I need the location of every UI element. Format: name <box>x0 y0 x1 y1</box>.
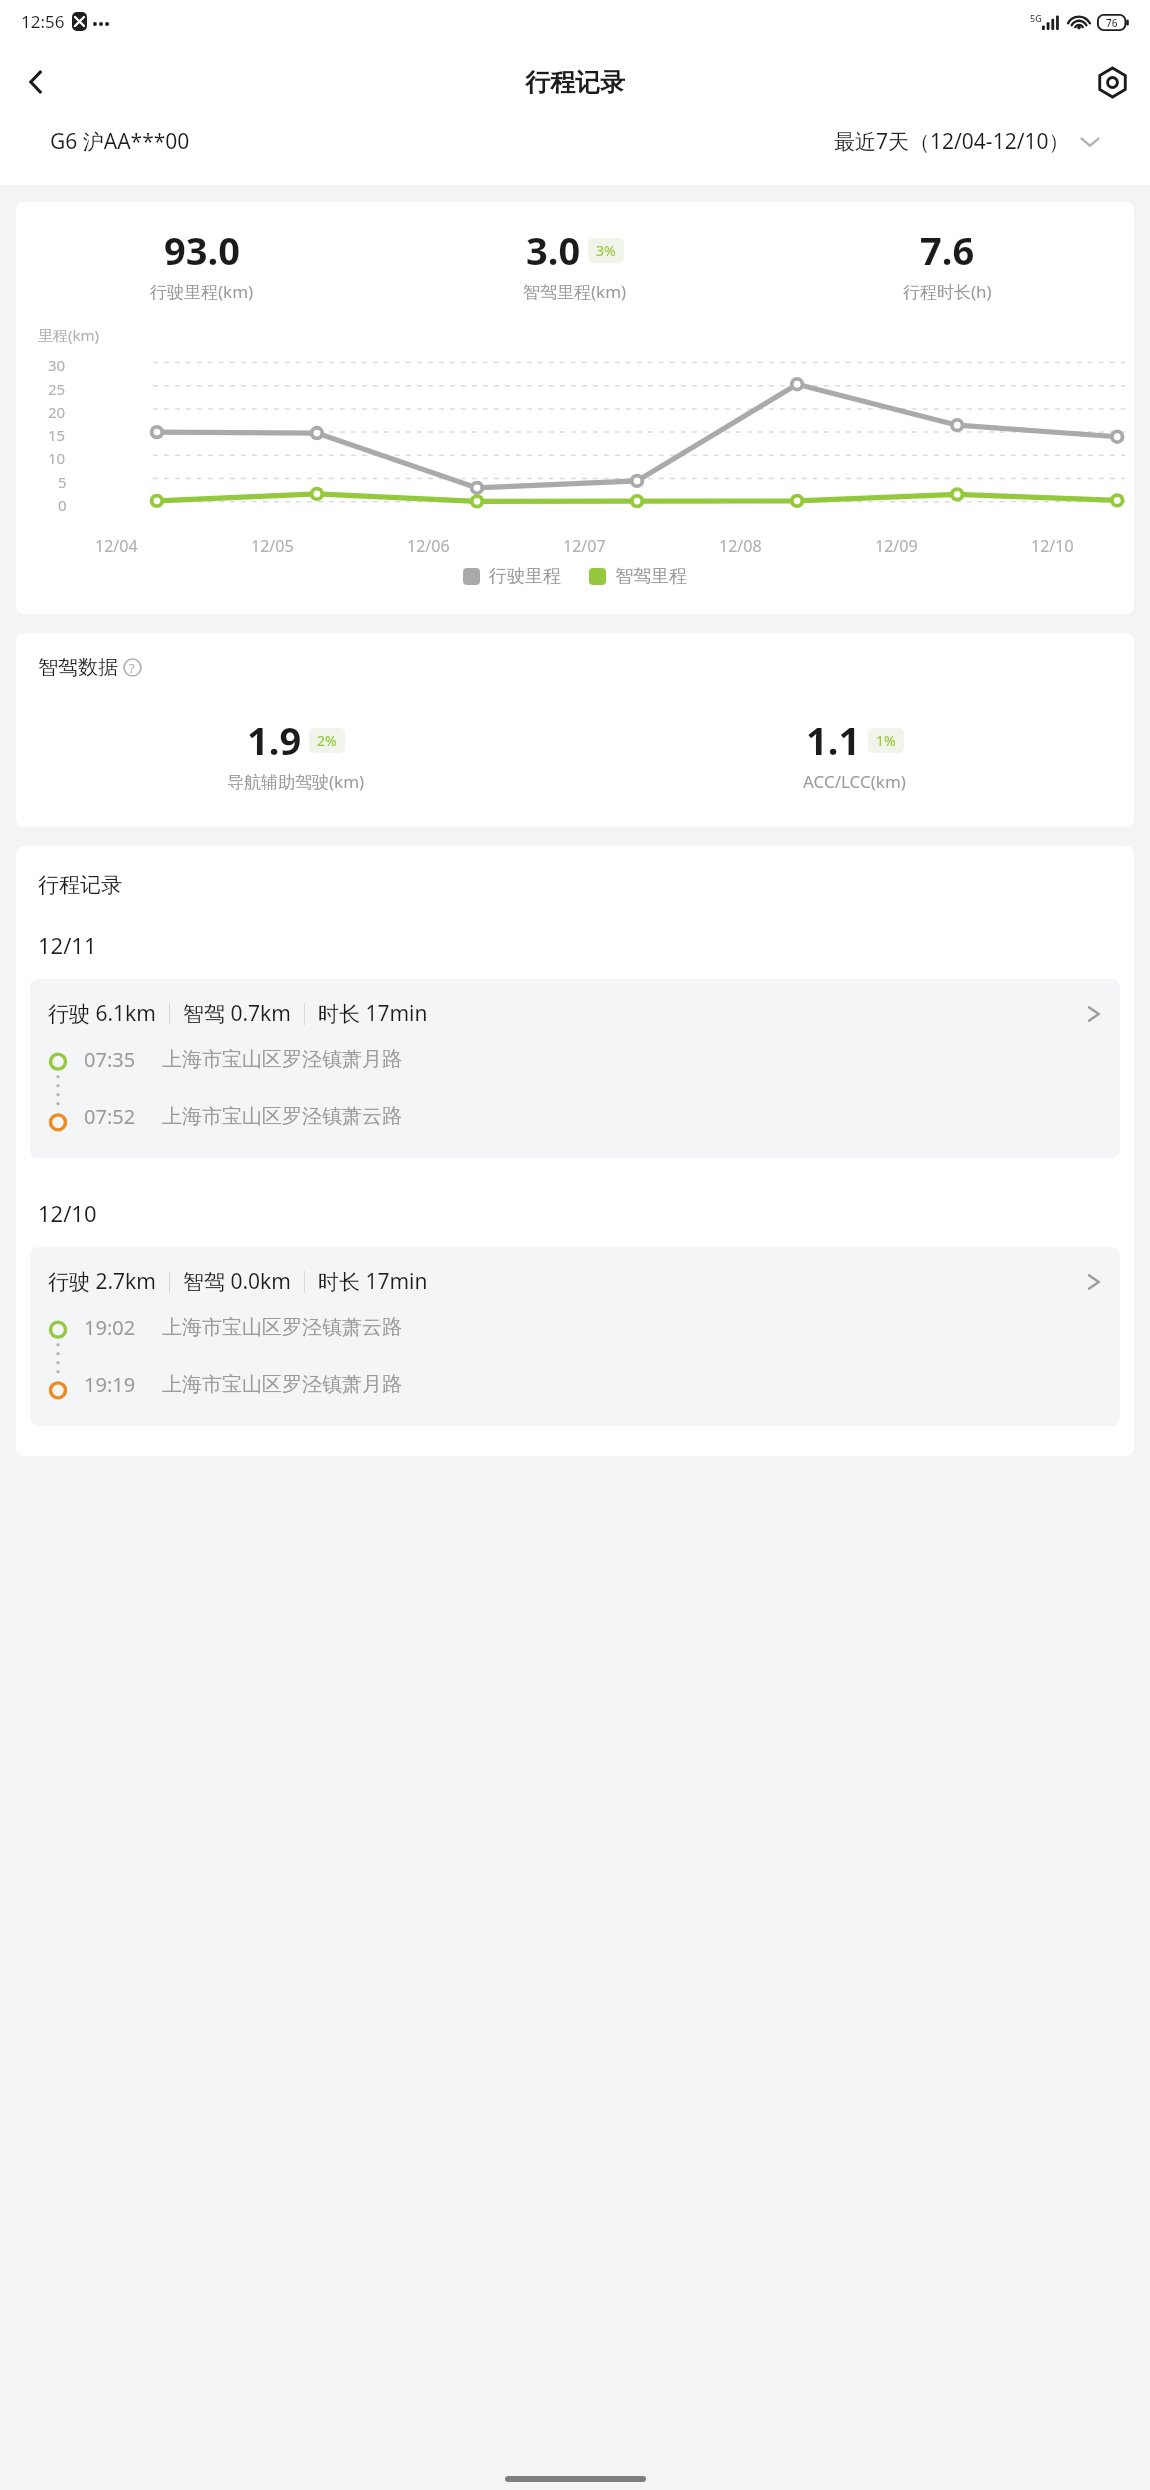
staticText: 1.9 <box>247 714 302 766</box>
staticText: 行程记录 <box>38 872 122 898</box>
staticText: 10 <box>48 448 66 468</box>
staticText: 0 <box>58 495 67 515</box>
staticText: 5G <box>1030 12 1042 24</box>
staticText: 行驶 2.7km <box>48 1267 156 1296</box>
staticText: 12/04 <box>95 535 138 557</box>
staticText: 行驶里程 <box>489 565 561 588</box>
button[interactable]: Back <box>8 54 64 110</box>
staticText: 最近7天（12/04-12/10） <box>834 127 1070 156</box>
staticText: ACC/LCC(km) <box>803 770 906 793</box>
button[interactable]: 行驶里程 <box>463 565 561 588</box>
button[interactable]: 行驶 2.7km <box>30 1247 1120 1426</box>
staticText: 2% <box>317 731 337 750</box>
staticText: 07:35 <box>84 1046 136 1073</box>
staticText: 12/10 <box>38 1198 97 1228</box>
staticText: 12/06 <box>407 535 450 557</box>
button[interactable]: 行驶 6.1km <box>30 979 1120 1158</box>
staticText: 智驾数据 <box>38 655 118 680</box>
staticText: 智驾 0.7km <box>183 999 291 1028</box>
staticText: 智驾里程 <box>615 565 687 588</box>
staticText: 5 <box>58 472 67 492</box>
staticText: 上海市宝山区罗泾镇萧月路 <box>162 1047 402 1072</box>
staticText: 时长 17min <box>318 999 428 1028</box>
staticText: 12/08 <box>719 535 762 557</box>
staticText: 93.0 <box>164 224 240 276</box>
staticText: 行驶里程(km) <box>150 280 254 303</box>
staticText: 12/10 <box>1031 535 1074 557</box>
staticText: 上海市宝山区罗泾镇萧月路 <box>162 1372 402 1397</box>
staticText: ? <box>129 659 135 677</box>
button[interactable]: 最近7天（12/04-12/10） <box>830 121 1104 162</box>
staticText: 12:56 <box>21 10 65 33</box>
staticText: 1.1 <box>806 714 861 766</box>
staticText: 里程(km) <box>38 325 100 345</box>
staticText: 1% <box>876 731 896 750</box>
staticText: 25 <box>48 379 66 399</box>
staticText: 12/09 <box>875 535 918 557</box>
staticText: 30 <box>48 355 66 375</box>
staticText: 12/05 <box>251 535 294 557</box>
staticText: 20 <box>48 402 66 422</box>
staticText: 上海市宝山区罗泾镇萧云路 <box>162 1104 402 1129</box>
staticText: 导航辅助驾驶(km) <box>227 770 365 793</box>
button[interactable]: 智驾里程 <box>589 565 687 588</box>
staticText: G6 沪AA***00 <box>50 127 190 156</box>
staticText: 12/07 <box>563 535 606 557</box>
staticText: 12/11 <box>38 930 97 960</box>
staticText: 智驾 0.0km <box>183 1267 291 1296</box>
staticText: 上海市宝山区罗泾镇萧云路 <box>162 1315 402 1340</box>
button[interactable]: 智驾数据 <box>38 655 148 680</box>
button[interactable]: Settings <box>1084 54 1140 110</box>
staticText: 时长 17min <box>318 1267 428 1296</box>
staticText: 3.0 <box>526 224 581 276</box>
staticText: 行程记录 <box>525 67 625 98</box>
staticText: 智驾里程(km) <box>523 280 627 303</box>
staticText: 15 <box>48 425 66 445</box>
staticText: 3% <box>596 241 616 260</box>
staticText: 19:19 <box>84 1371 136 1398</box>
staticText: 07:52 <box>84 1103 136 1130</box>
staticText: 19:02 <box>84 1314 136 1341</box>
staticText: 行程时长(h) <box>903 280 992 303</box>
staticText: 76 <box>1106 16 1118 30</box>
staticText: 7.6 <box>920 224 975 276</box>
staticText: 行驶 6.1km <box>48 999 156 1028</box>
